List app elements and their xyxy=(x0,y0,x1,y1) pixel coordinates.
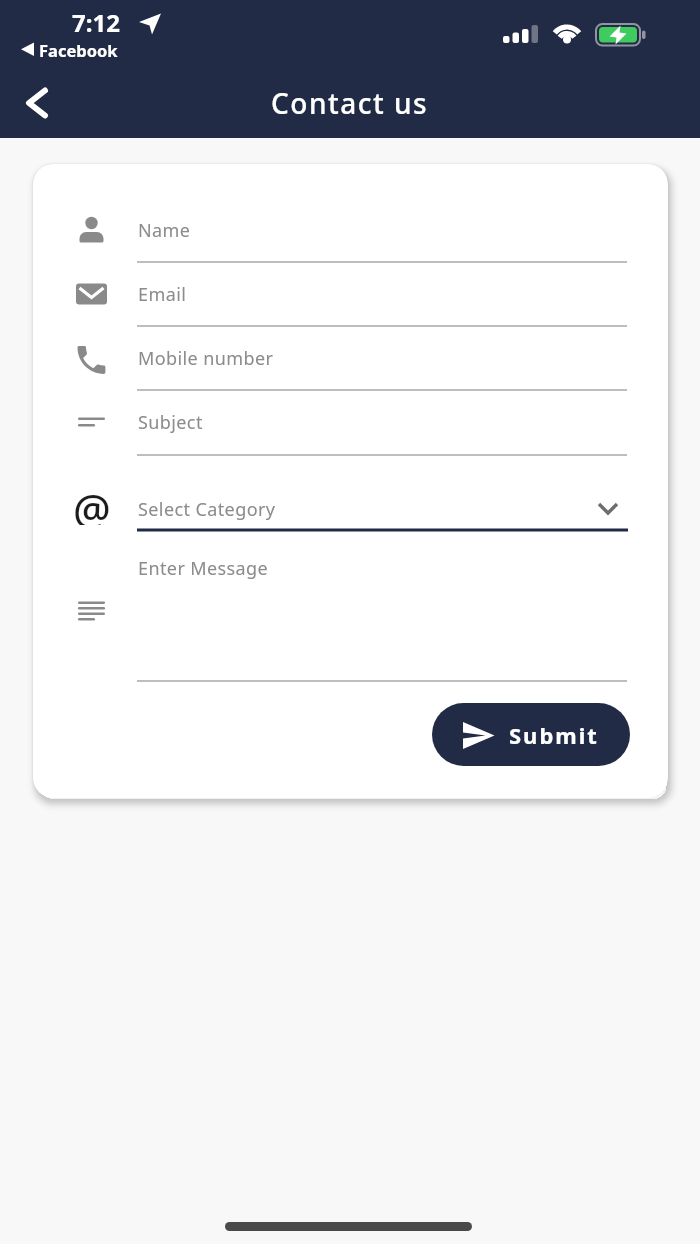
button[interactable] xyxy=(137,268,627,326)
button[interactable]: Submit xyxy=(432,703,630,766)
staticText: @ xyxy=(73,480,111,525)
staticText: Subject xyxy=(138,410,203,435)
staticText: Contact us xyxy=(271,84,429,122)
staticText: Submit xyxy=(509,720,599,750)
button[interactable] xyxy=(12,78,62,128)
button[interactable] xyxy=(137,332,627,390)
button[interactable] xyxy=(137,474,628,530)
button[interactable] xyxy=(137,204,627,262)
staticText: Email xyxy=(138,282,187,307)
staticText: Enter Message xyxy=(138,556,269,581)
staticText: 7:12 xyxy=(72,6,120,39)
staticText: Select Category xyxy=(138,497,276,522)
staticText: Mobile number xyxy=(138,346,274,371)
button[interactable] xyxy=(137,396,627,455)
staticText: Name xyxy=(138,218,191,243)
staticText: Facebook xyxy=(39,39,118,61)
button[interactable] xyxy=(137,544,628,681)
